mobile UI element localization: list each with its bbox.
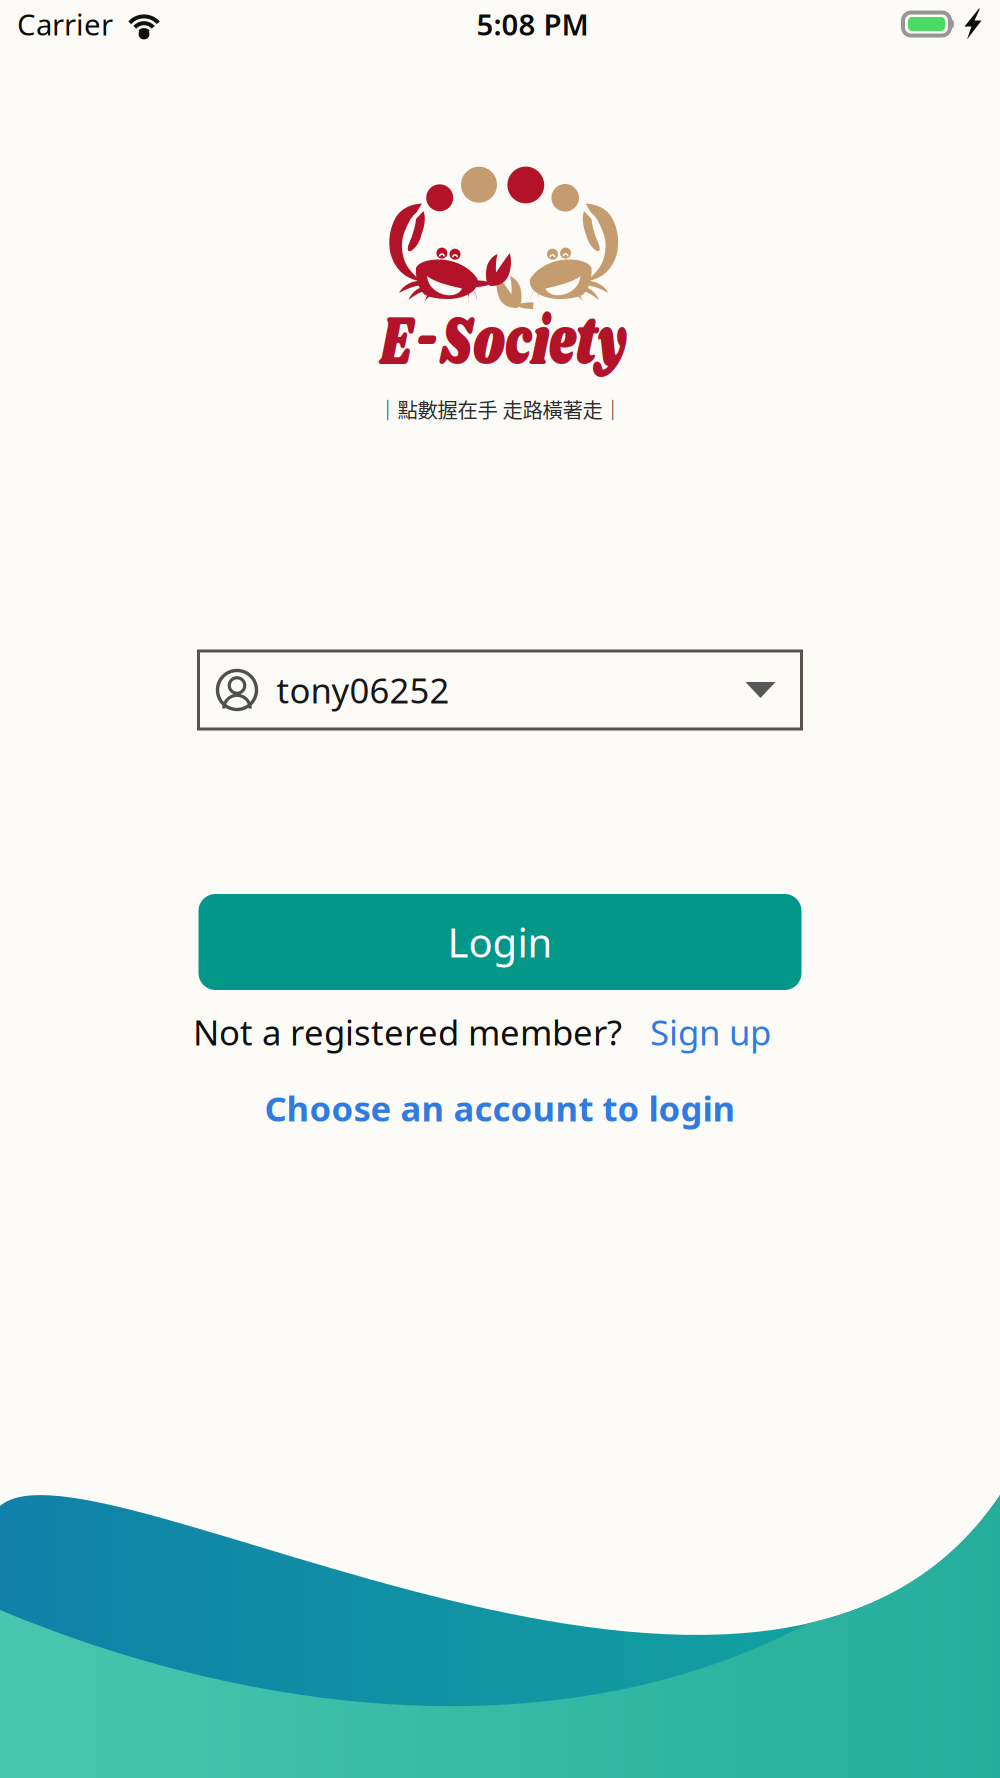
staticText: Login: [447, 915, 552, 968]
staticText: Not a registered member?: [193, 1009, 622, 1055]
button[interactable]: Sign up: [650, 1009, 771, 1055]
staticText: Carrier: [17, 4, 113, 43]
button[interactable]: Choose an account to login: [264, 1085, 735, 1131]
staticText: 5:08 PM: [476, 4, 588, 43]
staticText: E-Society: [380, 288, 830, 416]
staticText: Sign up: [650, 1009, 771, 1055]
staticText: Choose an account to login: [264, 1085, 735, 1131]
button[interactable]: tony06252: [198, 651, 801, 729]
button[interactable]: Login: [198, 894, 801, 990]
staticText: tony06252: [276, 667, 449, 713]
staticText: ｜點數握在手 走路橫著走｜: [377, 394, 622, 424]
